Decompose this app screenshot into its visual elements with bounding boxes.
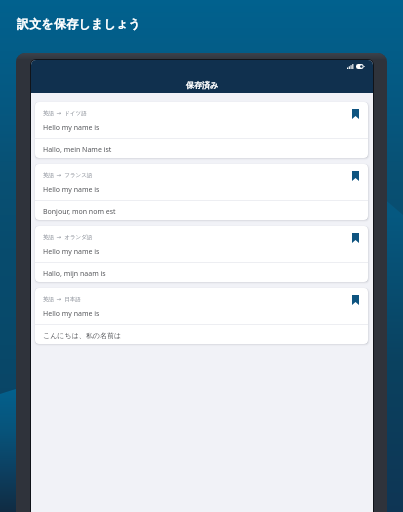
- button[interactable]: 英語 → オランダ語: [35, 226, 368, 282]
- staticText: こんにちは、私の名前は: [43, 331, 122, 340]
- button[interactable]: Bookmark: [352, 233, 359, 243]
- button[interactable]: 英語 → 日本語: [35, 288, 368, 344]
- staticText: 英語 → フランス語: [43, 171, 93, 179]
- button[interactable]: 英語 → フランス語: [35, 164, 368, 220]
- staticText: Hello my name is: [43, 309, 100, 319]
- staticText: 英語 → オランダ語: [43, 233, 93, 241]
- staticText: 英語 → 日本語: [43, 295, 81, 303]
- button[interactable]: Bookmark: [352, 109, 359, 119]
- staticText: Hello my name is: [43, 123, 100, 133]
- button[interactable]: Bookmark: [352, 295, 359, 305]
- button[interactable]: Bookmark: [352, 171, 359, 181]
- staticText: 保存済み: [186, 80, 219, 90]
- staticText: 英語 → ドイツ語: [43, 109, 87, 117]
- staticText: Hello my name is: [43, 247, 100, 257]
- staticText: Hello my name is: [43, 185, 100, 195]
- staticText: Hallo, mein Name ist: [43, 145, 112, 155]
- staticText: Bonjour, mon nom est: [43, 207, 116, 217]
- staticText: 訳文を保存しましょう: [17, 16, 141, 31]
- staticText: Hallo, mijn naam is: [43, 269, 106, 279]
- button[interactable]: 英語 → ドイツ語: [35, 102, 368, 158]
